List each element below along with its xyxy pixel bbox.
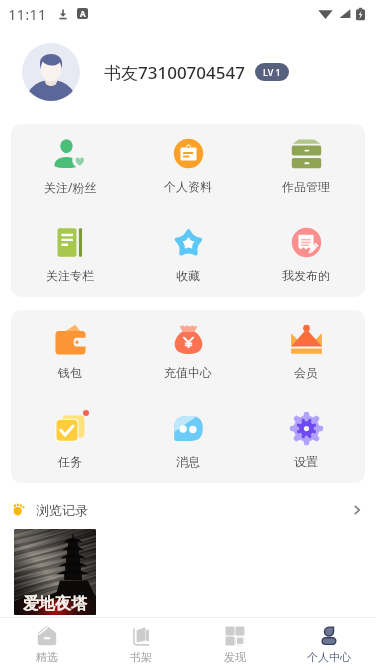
staticText: 消息 [176,454,200,469]
button[interactable]: 作品管理 [247,124,365,210]
button[interactable]: 钱包 [11,310,129,396]
other: More history [350,503,364,517]
button[interactable]: 个人中心 [282,618,376,670]
button[interactable]: Avatar [22,43,80,101]
staticText: 关注/粉丝 [44,179,97,195]
staticText: 个人资料 [164,179,212,194]
button[interactable]: 浏览记录 [0,490,376,529]
button[interactable]: 书架 [94,618,188,670]
button[interactable]: 收藏 [129,210,247,297]
staticText: 作品管理 [282,179,330,194]
staticText: 关注专栏 [46,268,94,283]
button[interactable]: 充值中心 [129,310,247,396]
staticText: 我发布的 [282,268,330,283]
button[interactable]: 设置 [247,396,365,483]
staticText: 爱地夜塔 [23,594,87,614]
button[interactable]: 精选 [0,618,94,670]
staticText: 钱包 [58,365,82,380]
staticText: A [80,8,86,19]
staticText: 任务 [58,454,82,469]
button[interactable]: 我发布的 [247,210,365,297]
staticText: 书架 [130,650,152,664]
staticText: 会员 [294,365,318,380]
button[interactable]: 爱地夜塔 [14,529,96,615]
staticText: 浏览记录 [36,502,88,518]
staticText: 发现 [224,650,246,664]
button[interactable]: 会员 [247,310,365,396]
button[interactable]: 发现 [188,618,282,670]
staticText: 设置 [294,454,318,469]
staticText: 11:11 [8,4,47,24]
staticText: 充值中心 [164,365,212,380]
staticText: LV 1 [263,66,281,78]
button[interactable]: 个人资料 [129,124,247,210]
button[interactable]: 任务 [11,396,129,483]
staticText: 个人中心 [307,650,351,664]
staticText: 书友73100704547 [104,61,245,84]
button[interactable]: 关注/粉丝 [11,124,129,210]
staticText: 精选 [36,650,58,664]
staticText: 收藏 [176,268,200,283]
button[interactable]: 关注专栏 [11,210,129,297]
button[interactable]: 消息 [129,396,247,483]
